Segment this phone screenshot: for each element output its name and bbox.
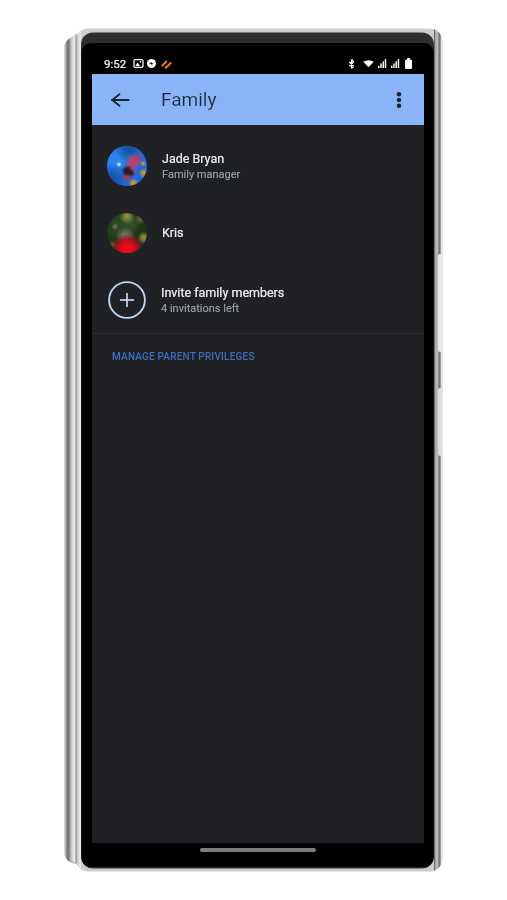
button[interactable]: Kris — [92, 199, 424, 266]
button[interactable]: MANAGE PARENT PRIVILEGES — [92, 334, 275, 373]
staticText: Family — [161, 88, 217, 110]
staticText: 9:52 — [104, 57, 127, 70]
staticText: Jade Bryan — [162, 151, 225, 166]
button[interactable]: More options — [379, 80, 419, 120]
staticText: MANAGE PARENT PRIVILEGES — [112, 351, 255, 363]
staticText: 4 invitations left — [161, 302, 240, 315]
button[interactable]: Back — [99, 79, 141, 121]
staticText: Invite family members — [161, 285, 285, 300]
button[interactable]: Jade Bryan — [92, 132, 424, 199]
staticText: Kris — [162, 225, 184, 240]
button[interactable]: Invite family members — [92, 266, 424, 333]
staticText: Family manager — [162, 168, 241, 181]
